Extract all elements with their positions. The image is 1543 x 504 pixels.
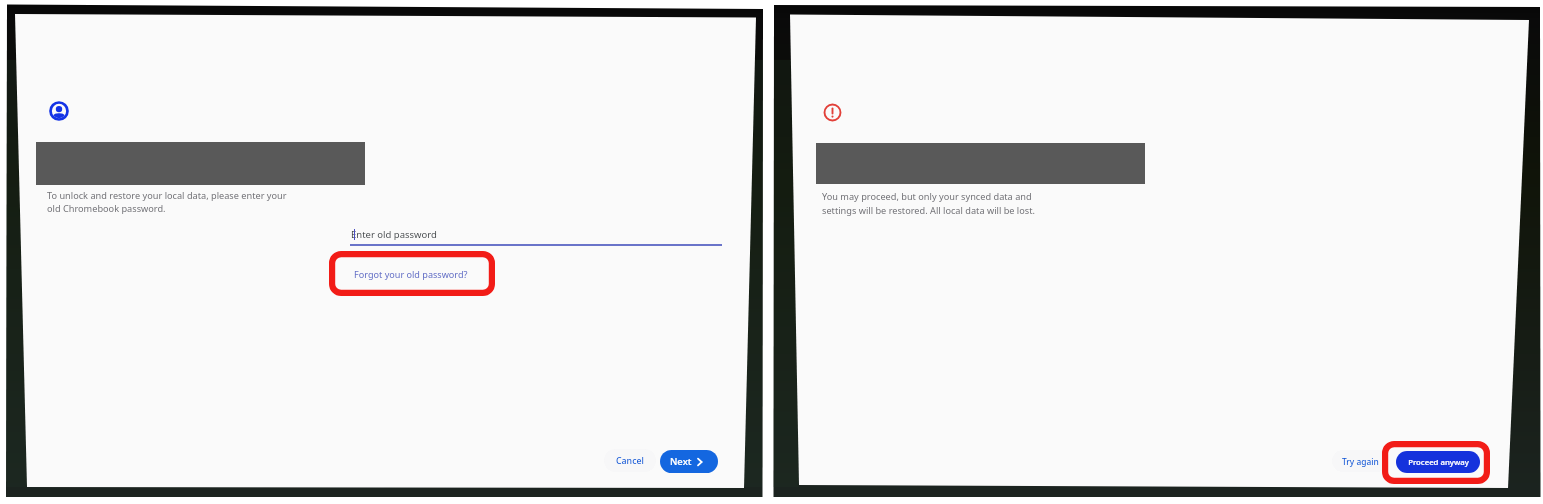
- button[interactable]: Proceed anyway: [1396, 451, 1480, 473]
- staticText: Forgot your old password?: [354, 268, 468, 280]
- button[interactable]: Try again: [1332, 450, 1388, 472]
- button[interactable]: Next: [660, 450, 718, 473]
- staticText: You may proceed, but only your synced da…: [822, 190, 1035, 216]
- button[interactable]: Cancel: [604, 449, 656, 472]
- button[interactable]: Account: [48, 100, 70, 122]
- staticText: To unlock and restore your local data, p…: [47, 189, 287, 215]
- staticText: Cancel: [616, 455, 644, 467]
- staticText: Try again: [1342, 456, 1379, 467]
- staticText: Proceed anyway: [1408, 457, 1469, 468]
- staticText: Enter old password: [351, 228, 437, 241]
- staticText: Next: [670, 455, 692, 468]
- button[interactable]: Forgot your old password?: [338, 259, 486, 288]
- button[interactable]: Enter old password: [350, 222, 722, 246]
- button[interactable]: Error: [823, 103, 842, 122]
